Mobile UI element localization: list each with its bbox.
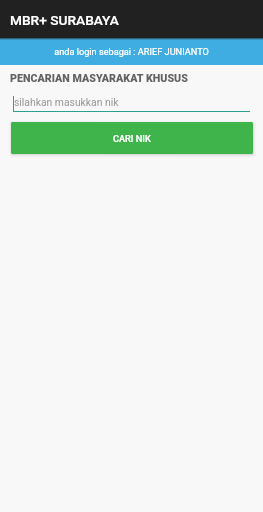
staticText: MBR+ SURABAYA (10, 12, 119, 28)
staticText: PENCARIAN MASYARAKAT KHUSUS (10, 72, 188, 85)
staticText: CARI NIK (113, 133, 151, 144)
staticText: silahkan masukkan nik (14, 96, 119, 108)
staticText: anda login sebagai : ARIEF JUNIANTO (54, 46, 209, 57)
button[interactable]: CARI NIK (11, 122, 253, 154)
button[interactable]: silahkan masukkan nik (13, 92, 250, 112)
